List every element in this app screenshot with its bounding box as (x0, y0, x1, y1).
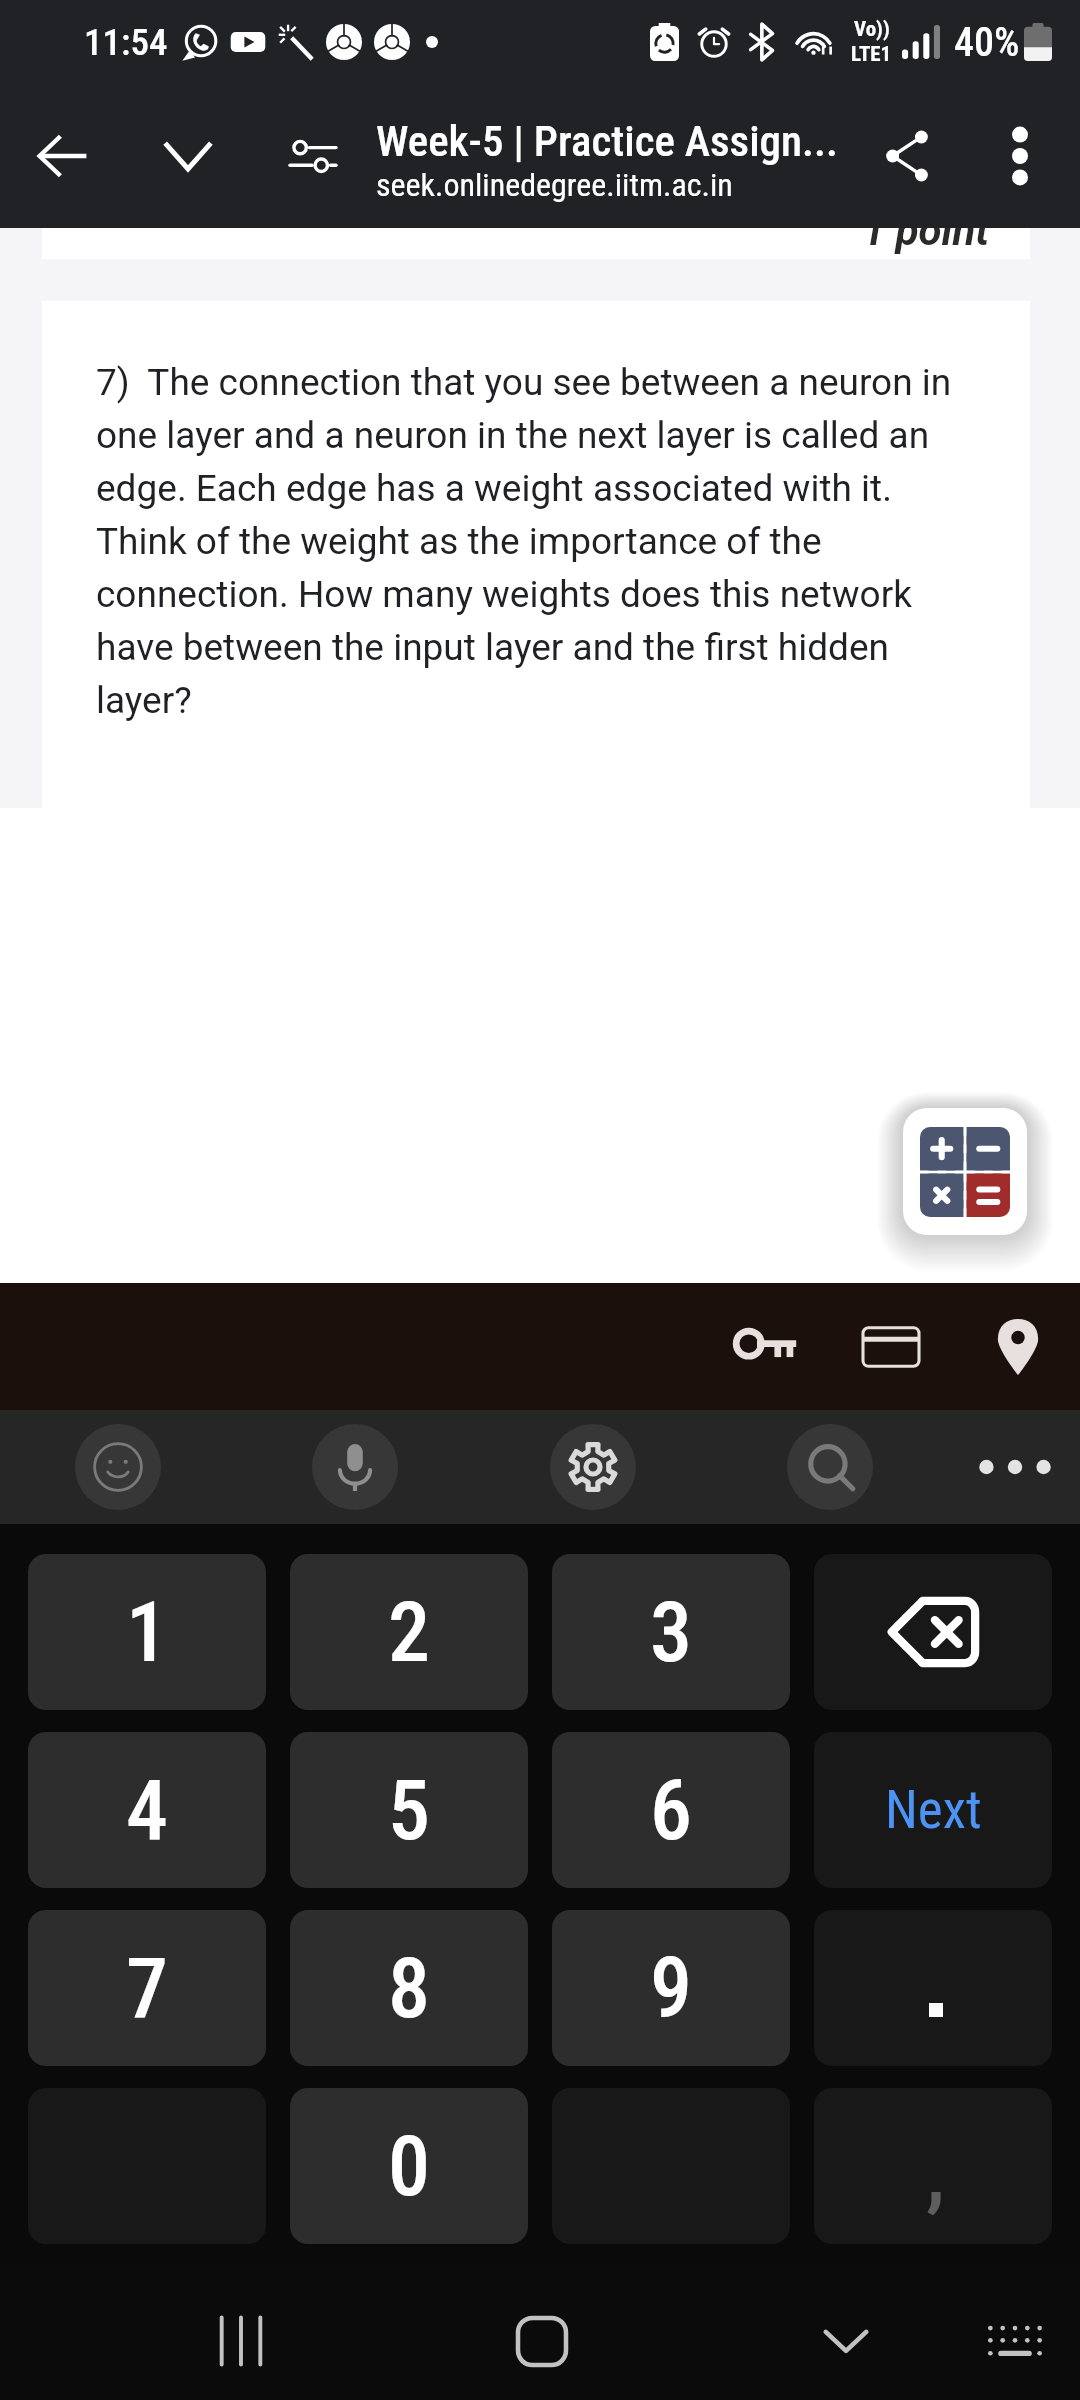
button[interactable]: Hide keyboard (796, 2291, 896, 2391)
button[interactable]: Addresses (962, 1291, 1074, 1403)
button[interactable]: . (814, 1910, 1052, 2066)
button[interactable]: 9 (552, 1910, 790, 2066)
button[interactable]: 2 (290, 1554, 528, 1710)
button[interactable]: Passwords (709, 1291, 821, 1403)
staticText: 9 (650, 1939, 692, 2037)
staticText: LTE1 (851, 42, 892, 67)
staticText: 6 (650, 1761, 692, 1859)
button[interactable]: 7 (28, 1910, 266, 2066)
button[interactable]: 5 (290, 1732, 528, 1888)
button[interactable]: Search (787, 1424, 873, 1510)
staticText: 8 (388, 1939, 430, 2037)
button[interactable]: Voice input (312, 1424, 398, 1510)
staticText: Vo)) (854, 17, 890, 42)
staticText: seek.onlinedegree.iitm.ac.in (376, 166, 733, 204)
button[interactable]: Backspace (814, 1554, 1052, 1710)
staticText: 1 point (862, 206, 990, 255)
staticText: 3 (650, 1583, 692, 1681)
button[interactable]: Switch tabs (143, 111, 233, 201)
button[interactable]: Recent apps (191, 2291, 291, 2391)
button[interactable]: Next (814, 1732, 1052, 1888)
button[interactable]: Keyboard (965, 2291, 1065, 2391)
button[interactable]: Keyboard settings (550, 1424, 636, 1510)
staticText: 4 (126, 1761, 168, 1859)
staticText: 2 (388, 1583, 430, 1681)
staticText: 7) The connection that you see between a… (96, 361, 958, 722)
staticText: 1 (126, 1583, 168, 1681)
button[interactable]: 1 (28, 1554, 266, 1710)
button[interactable]: Calculator (903, 1108, 1027, 1235)
staticText: 0 (388, 2117, 430, 2215)
button[interactable]: More options (975, 111, 1065, 201)
staticText: 11:54 (84, 21, 168, 64)
button[interactable]: , (814, 2088, 1052, 2244)
button[interactable]: Back (18, 111, 108, 201)
staticText: 7 (126, 1939, 168, 2037)
staticText: , (926, 2129, 946, 2220)
staticText: Next (885, 1779, 982, 1841)
button[interactable]: Home (492, 2291, 592, 2391)
button[interactable]: Page settings (268, 111, 358, 201)
button[interactable]: Share (857, 106, 957, 206)
staticText: 40% (954, 19, 1020, 66)
staticText: Week-5 | Practice Assign... (376, 116, 838, 166)
staticText: 5 (388, 1761, 430, 1859)
button[interactable]: Payment methods (835, 1291, 947, 1403)
button[interactable]: 6 (552, 1732, 790, 1888)
button[interactable]: 4 (28, 1732, 266, 1888)
button[interactable]: Emoji (75, 1424, 161, 1510)
button[interactable]: 3 (552, 1554, 790, 1710)
button[interactable]: More options (972, 1424, 1058, 1510)
button[interactable]: 8 (290, 1910, 528, 2066)
button[interactable]: 0 (290, 2088, 528, 2244)
